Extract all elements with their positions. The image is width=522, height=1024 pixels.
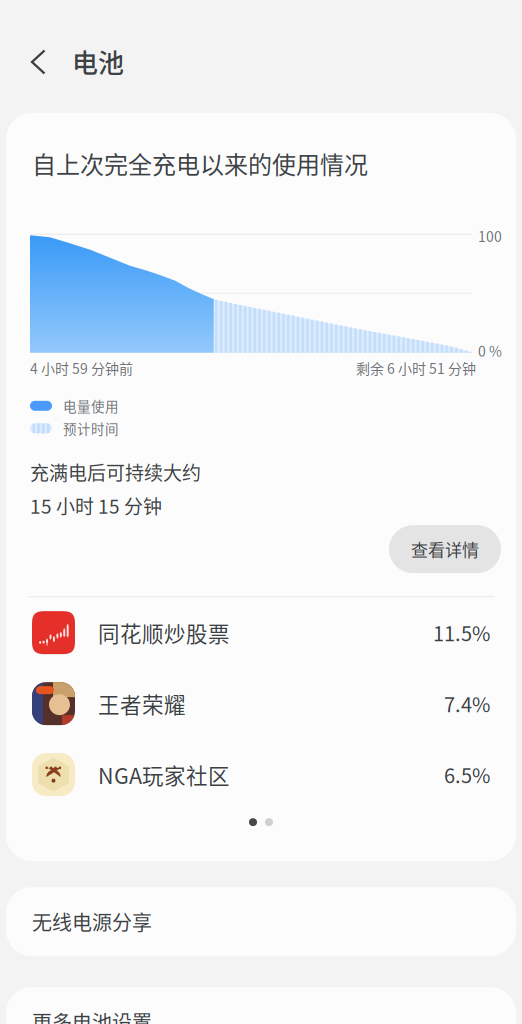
staticText: 无线电源分享 <box>32 907 152 936</box>
button[interactable]: 同花顺炒股票 <box>6 597 516 668</box>
button[interactable]: 更多电池设置 <box>6 987 516 1024</box>
staticText: 15 小时 15 分钟 <box>30 492 162 519</box>
button[interactable]: NGA玩家社区 <box>6 739 516 810</box>
staticText: 11.5% <box>433 618 490 647</box>
staticText: 更多电池设置 <box>32 1007 152 1024</box>
button[interactable]: 无线电源分享 <box>6 887 516 956</box>
staticText: 同花顺炒股票 <box>98 617 230 648</box>
staticText: 查看详情 <box>411 537 479 561</box>
staticText: 电量使用 <box>63 396 119 415</box>
staticText: 100 <box>478 226 502 246</box>
staticText: 充满电后可持续大约 <box>30 458 201 486</box>
staticText: 0 % <box>478 340 502 361</box>
button[interactable]: 王者荣耀 <box>6 668 516 739</box>
staticText: 预计时间 <box>63 419 119 438</box>
staticText: 7.4% <box>444 689 490 718</box>
staticText: 剩余 6 小时 51 分钟 <box>356 358 476 378</box>
staticText: 自上次完全充电以来的使用情况 <box>32 146 368 181</box>
staticText: NGA玩家社区 <box>98 759 230 790</box>
button[interactable]: 返回 <box>0 22 66 90</box>
staticText: 4 小时 59 分钟前 <box>30 358 133 378</box>
staticText: 电池 <box>72 43 124 80</box>
button[interactable]: 查看详情 <box>389 525 501 573</box>
staticText: 6.5% <box>444 760 490 789</box>
staticText: 王者荣耀 <box>98 688 186 719</box>
